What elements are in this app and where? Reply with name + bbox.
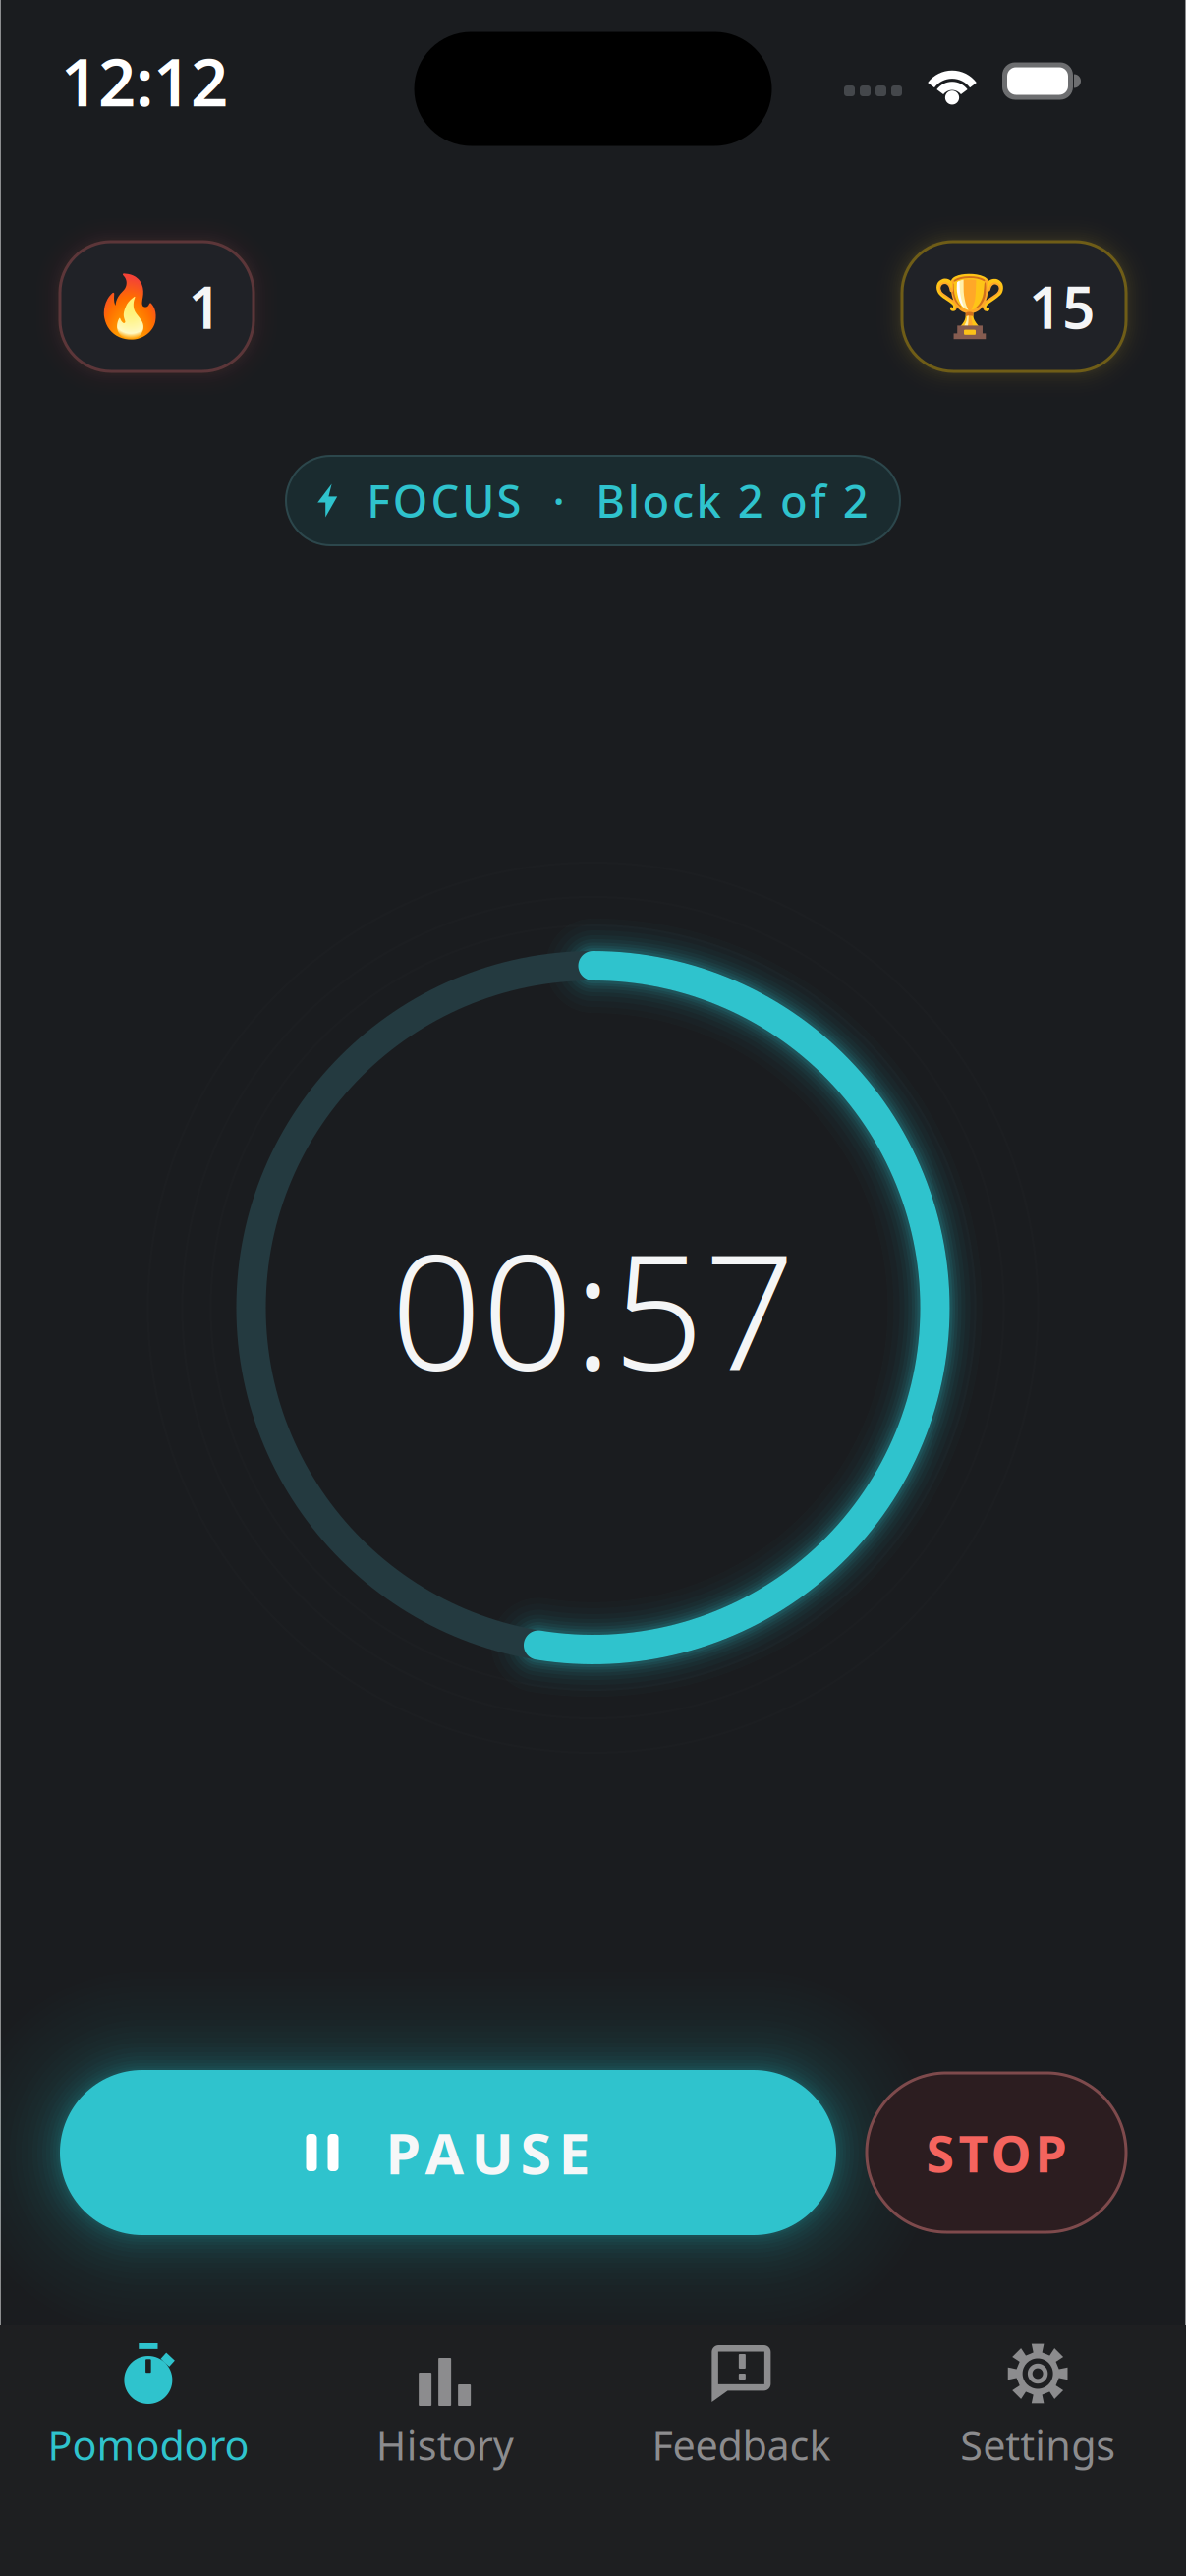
button[interactable]: PAUSE [60,2070,836,2235]
staticText: Pomodoro [48,2418,249,2472]
staticText: Feedback [652,2418,831,2472]
staticText: 12:12 [61,38,228,124]
staticText: STOP [926,2119,1067,2187]
button[interactable]: Pomodoro [0,2341,297,2472]
staticText: 🏆 [932,272,1007,341]
staticText: PAUSE [386,2115,590,2190]
button[interactable]: Feedback [593,2341,890,2472]
staticText: History [376,2418,514,2472]
button[interactable]: Settings [889,2341,1186,2472]
button[interactable]: Streak: 1 day [60,242,254,371]
staticText: FOCUS · Block 2 of 2 [367,471,868,530]
staticText: 🔥 [92,272,167,341]
button[interactable]: Achievements: 15 [902,242,1126,371]
button[interactable]: History [297,2341,593,2472]
staticText: Settings [960,2418,1115,2472]
staticText: 1 [188,268,222,345]
button[interactable]: STOP [867,2073,1126,2232]
staticText: 00:57 [391,1202,795,1414]
staticText: 15 [1029,268,1096,345]
